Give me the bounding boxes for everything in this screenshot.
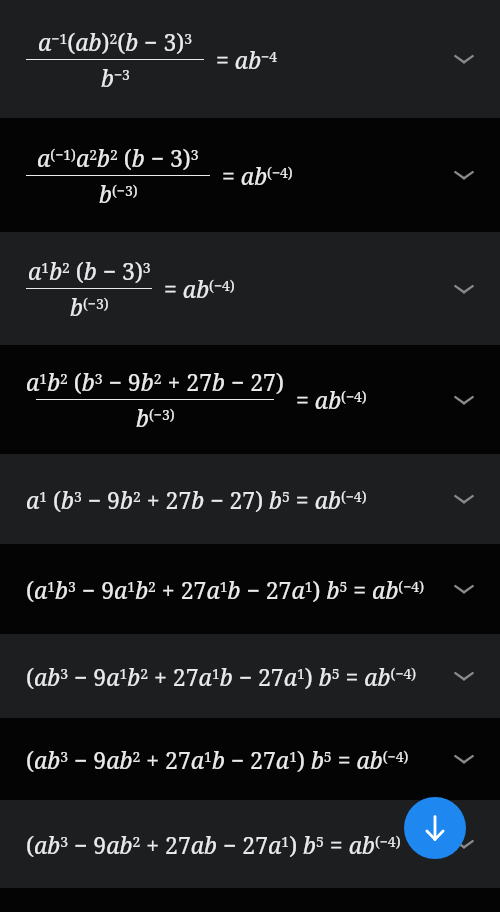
button[interactable]: Scroll to bottom <box>404 797 466 859</box>
button[interactable]: a(−1)a2b2 (b − 3)3 <box>0 118 500 232</box>
button[interactable]: Expand step <box>452 51 476 67</box>
staticText: b(−3) <box>99 178 138 209</box>
button[interactable]: (ab3 − 9a1b2 + 27a1b − 27a1) b5 = ab(−4) <box>0 634 500 718</box>
button[interactable]: Expand step <box>452 167 476 183</box>
staticText: a1b2 (b − 3)3 <box>28 255 151 286</box>
button[interactable]: Expand step <box>452 751 476 767</box>
button[interactable]: a−1(ab)2(b − 3)3 <box>0 0 500 118</box>
button[interactable]: (a1b3 − 9a1b2 + 27a1b − 27a1) b5 = ab(−4… <box>0 544 500 634</box>
staticText: = ab(−4) <box>296 384 367 415</box>
staticText: (ab3 − 9ab2 + 27a1b − 27a1) b5 = ab(−4) <box>26 744 409 775</box>
button[interactable]: Expand step <box>452 281 476 297</box>
staticText: (a1b3 − 9a1b2 + 27a1b − 27a1) b5 = ab(−4… <box>26 574 424 605</box>
staticText: = ab−4 <box>216 44 278 75</box>
staticText: = ab(−4) <box>222 160 293 191</box>
button[interactable]: Expand step <box>452 836 476 852</box>
button[interactable]: a1b2 (b − 3)3 <box>0 232 500 345</box>
button[interactable]: a1 (b3 − 9b2 + 27b − 27) b5 = ab(−4) <box>0 454 500 544</box>
staticText: = ab(−4) <box>164 273 235 304</box>
button[interactable]: a1b2 (b3 − 9b2 + 27b − 27) <box>0 345 500 454</box>
button[interactable]: (ab3 − 9ab2 + 27ab − 27a1) b5 = ab(−4) <box>0 800 500 888</box>
button[interactable]: Expand step <box>452 581 476 597</box>
staticText: b(−3) <box>70 291 109 322</box>
staticText: a−1(ab)2(b − 3)3 <box>38 26 193 57</box>
staticText: (ab3 − 9a1b2 + 27a1b − 27a1) b5 = ab(−4) <box>26 661 417 692</box>
button[interactable]: (ab3 − 9ab2 + 27a1b − 27a1) b5 = ab(−4) <box>0 718 500 800</box>
staticText: b(−3) <box>136 402 175 433</box>
staticText: a1 (b3 − 9b2 + 27b − 27) b5 = ab(−4) <box>26 484 367 515</box>
button[interactable]: Expand step <box>452 491 476 507</box>
staticText: a1b2 (b3 − 9b2 + 27b − 27) <box>26 366 284 397</box>
staticText: b−3 <box>101 62 130 93</box>
button[interactable]: Expand step <box>452 668 476 684</box>
staticText: (ab3 − 9ab2 + 27ab − 27a1) b5 = ab(−4) <box>26 829 401 860</box>
staticText: a(−1)a2b2 (b − 3)3 <box>37 142 199 173</box>
button[interactable]: Expand step <box>452 392 476 408</box>
